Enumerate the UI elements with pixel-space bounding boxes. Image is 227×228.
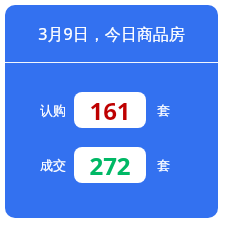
- staticText: 161: [89, 94, 131, 127]
- button[interactable]: 成交: [5, 147, 218, 183]
- staticText: 套: [157, 102, 170, 118]
- staticText: 套: [157, 157, 170, 173]
- button[interactable]: 3月9日，今日商品房: [5, 5, 218, 62]
- staticText: 成交: [40, 157, 66, 173]
- staticText: 3月9日，今日商品房: [38, 23, 185, 45]
- staticText: 272: [89, 149, 131, 182]
- staticText: 认购: [40, 102, 66, 118]
- button[interactable]: 认购: [5, 92, 218, 128]
